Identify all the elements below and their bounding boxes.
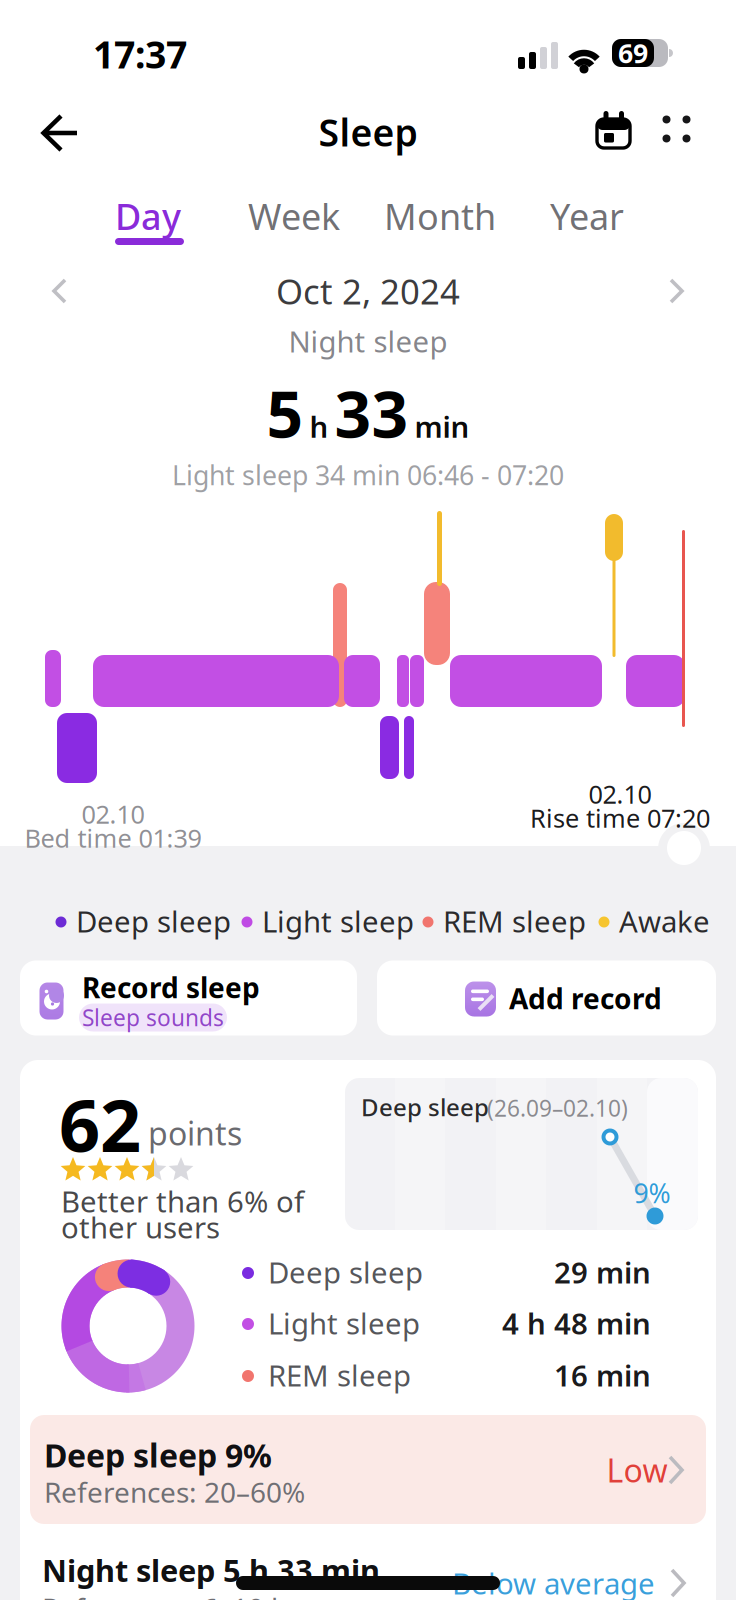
staticText: Sleep <box>318 107 417 157</box>
staticText: 17:37 <box>93 29 187 79</box>
staticText: REM sleep <box>443 901 586 940</box>
staticText: h <box>309 407 328 446</box>
staticText: References: 6–10 h <box>42 1589 288 1600</box>
staticText: References: 20–60% <box>44 1473 305 1511</box>
staticText: 33 <box>334 370 408 455</box>
staticText: Light sleep 34 min 06:46 - 07:20 <box>172 457 564 493</box>
button[interactable] <box>648 104 704 160</box>
staticText: Record sleep <box>82 969 260 1006</box>
button[interactable]: Night sleep 5 h 33 min <box>20 1538 716 1600</box>
staticText: Night sleep 5 h 33 min <box>42 1550 380 1590</box>
staticText: min <box>414 407 469 446</box>
button[interactable]: Year <box>535 189 639 243</box>
staticText: points <box>148 1112 242 1154</box>
staticText: Below average <box>452 1563 655 1600</box>
staticText: Deep sleep 9% <box>44 1434 272 1476</box>
staticText: Oct 2, 2024 <box>276 268 460 314</box>
staticText: 62 <box>59 1076 141 1172</box>
staticText: 5 <box>266 370 303 455</box>
staticText: 4 h 48 min <box>502 1303 651 1342</box>
staticText: (26.09–02.10) <box>487 1093 628 1123</box>
button[interactable]: Month <box>378 189 502 243</box>
staticText: Better than 6% of <box>61 1181 304 1220</box>
staticText: Rise time 07:20 <box>530 801 710 835</box>
button[interactable]: Add record <box>377 960 716 1035</box>
staticText: Light sleep <box>268 1303 420 1342</box>
staticText: Awake <box>619 901 710 940</box>
button[interactable]: Deep sleep 9% <box>30 1415 706 1524</box>
button[interactable] <box>652 266 702 316</box>
staticText: Deep sleep <box>76 901 231 940</box>
button[interactable] <box>667 831 701 865</box>
staticText: Low <box>606 1449 667 1491</box>
button[interactable] <box>585 102 641 158</box>
button[interactable] <box>34 266 84 316</box>
staticText: 02.10 <box>588 777 651 811</box>
staticText: Deep sleep <box>361 1091 489 1123</box>
staticText: Night sleep <box>288 321 447 360</box>
staticText: Week <box>248 192 340 240</box>
staticText: 69 <box>618 35 648 71</box>
staticText: Month <box>384 192 496 240</box>
staticText: 9% <box>633 1175 670 1211</box>
button[interactable]: Day <box>96 189 200 243</box>
staticText: Year <box>550 192 624 240</box>
staticText: REM sleep <box>268 1355 411 1394</box>
button[interactable] <box>29 101 93 165</box>
staticText: Deep sleep <box>268 1252 423 1291</box>
staticText: Bed time 01:39 <box>24 821 201 855</box>
staticText: Sleep sounds <box>82 1002 224 1032</box>
staticText: 29 min <box>554 1252 651 1291</box>
staticText: 02.10 <box>81 797 144 831</box>
button[interactable]: Record sleep <box>20 960 357 1035</box>
staticText: Light sleep <box>262 901 414 940</box>
staticText: 16 min <box>554 1355 651 1394</box>
button[interactable]: Week <box>239 189 349 243</box>
staticText: Add record <box>509 980 662 1017</box>
staticText: other users <box>61 1207 220 1246</box>
staticText: Day <box>115 192 181 240</box>
